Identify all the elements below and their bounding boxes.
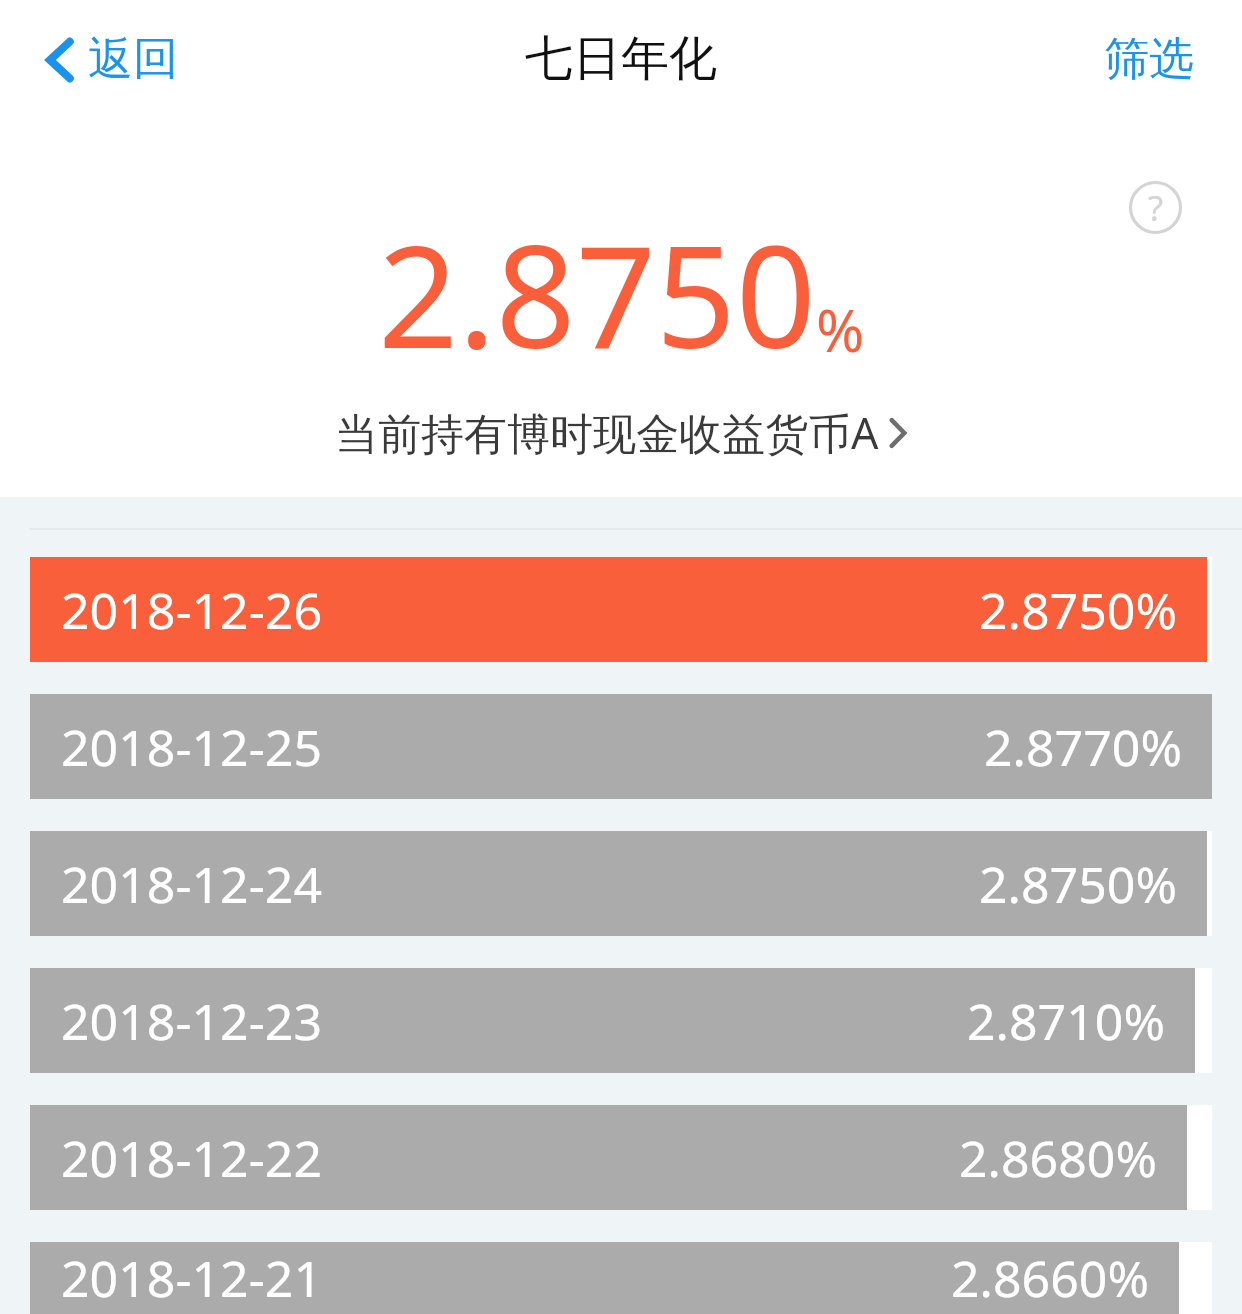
button[interactable]: 2018-12-26: [30, 557, 1212, 662]
staticText: 返回: [88, 31, 178, 88]
button[interactable]: 当前持有博时现金收益货币A: [335, 403, 907, 462]
staticText: 2.8680%: [959, 1124, 1157, 1192]
button[interactable]: 2018-12-23: [30, 968, 1212, 1073]
staticText: %: [816, 290, 865, 369]
staticText: ?: [1148, 184, 1164, 232]
staticText: 2018-12-25: [61, 713, 322, 781]
staticText: 2.8660%: [951, 1244, 1149, 1312]
button[interactable]: 2018-12-22: [30, 1105, 1212, 1210]
button[interactable]: 返回: [46, 31, 178, 88]
staticText: 2018-12-21: [61, 1244, 322, 1312]
staticText: 七日年化: [525, 29, 717, 89]
staticText: 当前持有博时现金收益货币A: [335, 403, 879, 462]
staticText: 2.8750%: [979, 576, 1177, 644]
staticText: 2.8750: [378, 198, 816, 389]
staticText: 2.8750%: [979, 850, 1177, 918]
staticText: 2018-12-24: [61, 850, 322, 918]
button[interactable]: 帮助: [1129, 181, 1182, 234]
staticText: 2018-12-22: [61, 1124, 322, 1192]
button[interactable]: 筛选: [1104, 31, 1194, 88]
staticText: 2018-12-23: [61, 987, 322, 1055]
staticText: 2.8770%: [984, 713, 1182, 781]
button[interactable]: 2018-12-24: [30, 831, 1212, 936]
staticText: 2018-12-26: [61, 576, 322, 644]
staticText: 2.8710%: [967, 987, 1165, 1055]
button[interactable]: 2018-12-21: [30, 1242, 1212, 1314]
staticText: 筛选: [1104, 31, 1194, 88]
button[interactable]: 2018-12-25: [30, 694, 1212, 799]
